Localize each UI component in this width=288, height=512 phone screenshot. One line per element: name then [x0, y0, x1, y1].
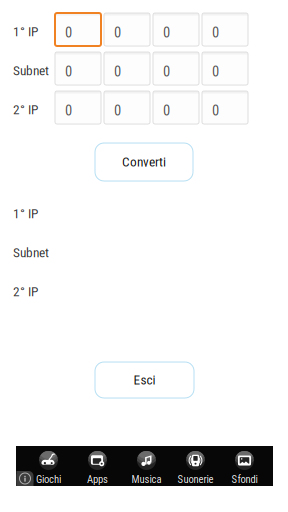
staticText: 0 — [212, 102, 219, 119]
staticText: Suonerie — [177, 473, 213, 485]
button[interactable]: Giochi — [24, 446, 73, 486]
staticText: Subnet — [13, 245, 49, 261]
staticText: 0 — [163, 102, 170, 119]
staticText: 2° IP — [13, 102, 38, 118]
button[interactable]: Esci — [95, 362, 194, 398]
button[interactable]: 0 — [202, 13, 248, 46]
button[interactable]: 0 — [153, 52, 199, 85]
staticText: 0 — [114, 63, 121, 80]
button[interactable]: 0 — [104, 91, 150, 124]
staticText: 0 — [212, 63, 219, 80]
staticText: 0 — [114, 24, 121, 41]
button[interactable]: Converti — [95, 143, 193, 181]
staticText: Giochi — [36, 473, 61, 485]
button[interactable]: Apps — [73, 446, 122, 486]
button[interactable]: 0 — [55, 91, 101, 124]
button[interactable]: 0 — [104, 13, 150, 46]
staticText: Subnet — [13, 63, 49, 79]
staticText: 0 — [65, 102, 72, 119]
staticText: Apps — [87, 473, 108, 485]
staticText: 1° IP — [13, 206, 38, 222]
staticText: Musica — [131, 473, 161, 485]
staticText: 0 — [163, 63, 170, 80]
button[interactable]: 0 — [153, 91, 199, 124]
staticText: 0 — [65, 63, 72, 80]
button[interactable]: Suonerie — [171, 446, 220, 486]
button[interactable]: 0 — [202, 91, 248, 124]
button[interactable]: 0 — [202, 52, 248, 85]
staticText: Esci — [133, 372, 155, 388]
staticText: 0 — [114, 102, 121, 119]
button[interactable]: 0 — [104, 52, 150, 85]
staticText: 1° IP — [13, 24, 38, 40]
staticText: 0 — [163, 24, 170, 41]
staticText: 0 — [212, 24, 219, 41]
button[interactable]: 0 — [153, 13, 199, 46]
button[interactable]: 0 — [55, 13, 101, 46]
button[interactable]: 0 — [55, 52, 101, 85]
staticText: 2° IP — [13, 284, 38, 300]
staticText: 0 — [65, 24, 72, 41]
staticText: Sfondi — [231, 473, 257, 485]
staticText: Converti — [122, 154, 166, 170]
button[interactable]: Sfondi — [220, 446, 269, 486]
button[interactable]: Info — [16, 471, 33, 486]
button[interactable]: Musica — [122, 446, 171, 486]
